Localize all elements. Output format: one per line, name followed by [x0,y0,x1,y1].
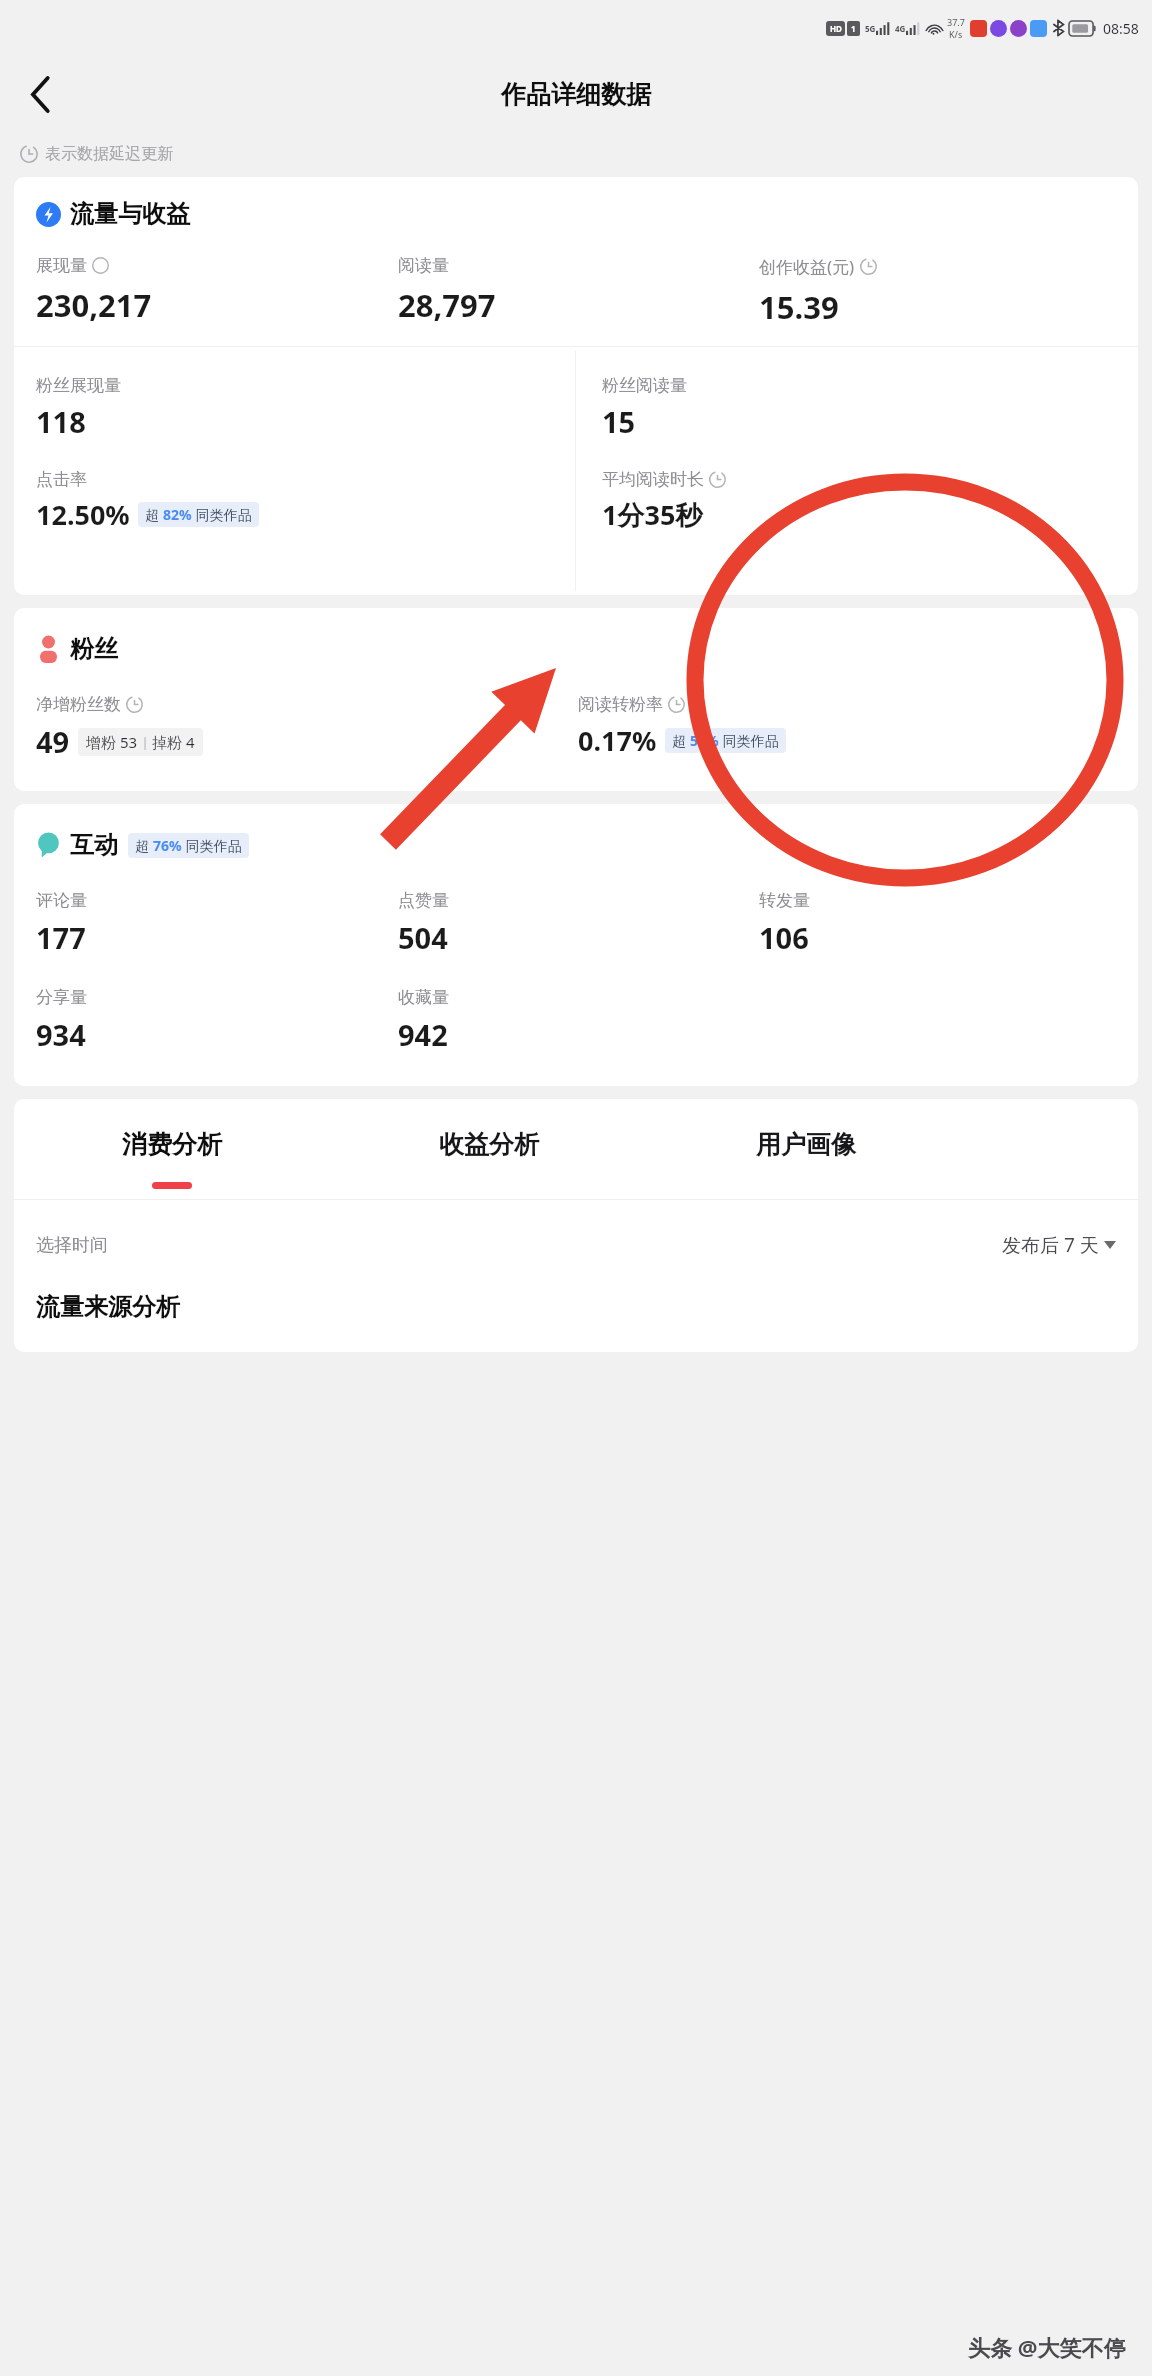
staticText: 106 [759,918,809,957]
staticText: 超 [135,836,153,855]
staticText: 发布后 7 天 [1002,1232,1099,1258]
staticText: 粉丝阅读量 [602,375,687,396]
staticText: 12.50% [36,496,130,533]
staticText: 942 [398,1015,448,1054]
staticText: 同类作品 [192,505,252,524]
staticText: HD [830,23,842,34]
staticText: 82% [163,505,192,524]
button[interactable]: 发布后 7 天 [1002,1232,1116,1258]
staticText: 表示数据延迟更新 [45,144,173,164]
staticText: 4 [186,732,195,752]
staticText: 28,797 [398,284,496,326]
staticText: 作品详细数据 [501,79,651,110]
staticText: 增粉 [86,732,120,752]
staticText: 净增粉丝数 [36,694,121,715]
staticText: | [138,733,152,751]
button[interactable]: 收益分析 [330,1125,647,1199]
button[interactable]: Back [14,68,66,120]
staticText: 177 [36,918,86,957]
staticText: 头条 @大笑不停 [968,2332,1126,2362]
staticText: 收益分析 [439,1129,539,1160]
staticText: 超 [145,505,163,524]
staticText: 1 [851,23,856,34]
staticText: 粉丝 [70,634,118,664]
staticText: 互动 [70,830,118,860]
staticText: 118 [36,402,86,441]
staticText: 消费分析 [122,1129,222,1160]
staticText: 选择时间 [36,1234,108,1257]
staticText: 平均阅读时长 [602,469,704,490]
staticText: 同类作品 [719,731,779,750]
staticText: 转发量 [759,890,810,911]
staticText: 阅读转粉率 [578,694,663,715]
staticText: 收藏量 [398,987,449,1008]
staticText: 54% [690,731,719,750]
staticText: 15.39 [759,286,839,328]
staticText: 同类作品 [182,836,242,855]
staticText: 点赞量 [398,890,449,911]
staticText: 53 [120,732,138,752]
staticText: 粉丝展现量 [36,375,121,396]
staticText: 超 [672,731,690,750]
staticText: 掉粉 [152,732,186,752]
staticText: 5G [865,23,876,34]
staticText: 分享量 [36,987,87,1008]
staticText: 49 [36,722,70,761]
staticText: 评论量 [36,890,87,911]
staticText: 流量与收益 [70,199,190,229]
staticText: 展现量 [36,255,87,276]
staticText: 0.17% [578,722,657,759]
staticText: 点击率 [36,469,87,490]
staticText: 08:58 [1103,19,1139,38]
staticText: 37.7 [947,16,965,28]
staticText: 阅读量 [398,255,449,276]
staticText: 用户画像 [756,1129,856,1160]
staticText: 创作收益(元) [759,255,855,278]
staticText: 934 [36,1015,86,1054]
staticText: 15 [602,402,636,441]
staticText: K/s [949,28,963,40]
staticText: 4G [895,23,906,34]
staticText: 230,217 [36,284,152,326]
button[interactable]: 消费分析 [14,1125,330,1199]
staticText: 1分35秒 [602,496,703,533]
button[interactable]: 用户画像 [647,1125,964,1199]
staticText: 流量来源分析 [36,1292,180,1322]
staticText: 504 [398,918,448,957]
staticText: 76% [153,836,182,855]
